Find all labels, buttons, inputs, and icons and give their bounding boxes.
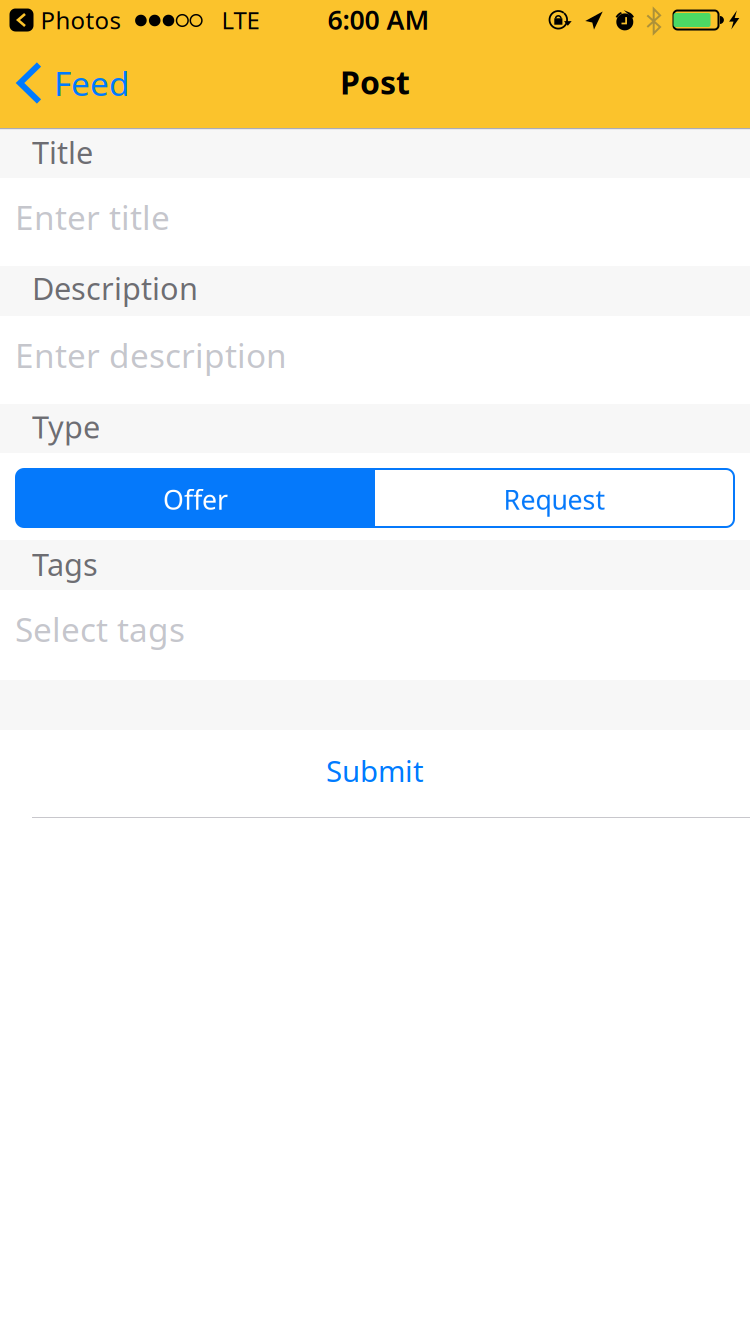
staticText: Submit xyxy=(326,751,424,790)
button[interactable]: Select tags xyxy=(0,590,750,680)
staticText: Offer xyxy=(163,482,228,517)
staticText: LTE xyxy=(221,4,259,36)
button[interactable]: Enter description xyxy=(0,316,750,404)
staticText: Tags xyxy=(32,544,98,584)
staticText: Title xyxy=(32,132,93,172)
button[interactable]: Offer xyxy=(16,469,375,527)
staticText: 6:00 AM xyxy=(327,2,429,37)
staticText: Feed xyxy=(54,61,130,105)
button[interactable]: Enter title xyxy=(0,178,750,266)
staticText: Enter description xyxy=(15,333,287,377)
staticText: Photos xyxy=(40,4,120,36)
staticText: Post xyxy=(340,61,410,103)
staticText: Type xyxy=(32,406,100,447)
staticText: Enter title xyxy=(15,195,170,239)
staticText: Select tags xyxy=(15,607,185,651)
button[interactable]: Submit xyxy=(0,730,750,818)
staticText: Request xyxy=(503,482,605,517)
staticText: Description xyxy=(32,268,198,308)
button[interactable]: Feed xyxy=(0,40,144,124)
button[interactable]: Return to Photos xyxy=(9,0,120,40)
button[interactable]: Request xyxy=(375,469,734,527)
